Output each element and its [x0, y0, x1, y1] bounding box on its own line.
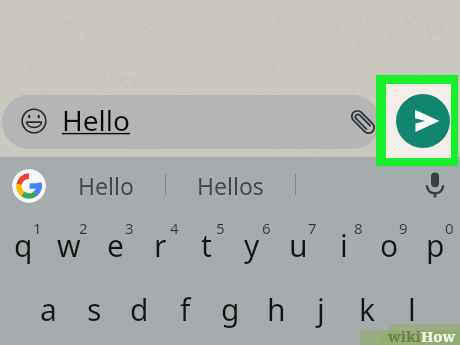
button[interactable]: g	[207, 267, 253, 331]
staticText: wiki	[388, 326, 421, 345]
staticText: t	[201, 225, 212, 266]
button[interactable]: Voice input	[419, 170, 451, 202]
staticText: How	[421, 326, 456, 345]
button[interactable]: j	[298, 267, 344, 331]
staticText: h	[267, 289, 286, 330]
staticText: 6	[262, 218, 271, 238]
button[interactable]: h	[253, 267, 299, 331]
button[interactable]: f	[162, 267, 208, 331]
staticText: 0	[445, 218, 454, 238]
staticText: r	[154, 225, 167, 266]
staticText: e	[107, 225, 124, 266]
button[interactable]: Hellos	[182, 157, 294, 204]
button[interactable]: Hello	[66, 157, 164, 204]
staticText: f	[180, 289, 191, 330]
button[interactable]: l	[389, 267, 435, 331]
staticText: w	[57, 225, 81, 266]
button[interactable]: k	[344, 267, 390, 331]
button[interactable]: e	[92, 203, 138, 267]
staticText: i	[340, 225, 348, 266]
button[interactable]: i	[321, 203, 367, 267]
staticText: l	[408, 289, 416, 330]
staticText: u	[289, 225, 308, 266]
staticText: Hellos	[197, 170, 264, 201]
button[interactable]: q	[0, 203, 46, 267]
button[interactable]: Send	[396, 94, 450, 148]
staticText: q	[14, 225, 33, 266]
button[interactable]: Attach	[341, 100, 380, 144]
button[interactable]: r	[137, 203, 183, 267]
staticText: p	[426, 225, 445, 266]
staticText: Hello	[62, 101, 130, 139]
button[interactable]: Google	[12, 169, 46, 203]
button[interactable]: s	[71, 267, 117, 331]
staticText: Hello	[78, 170, 134, 201]
button[interactable]: w	[46, 203, 92, 267]
staticText: 7	[308, 218, 317, 238]
button[interactable]: a	[25, 267, 71, 331]
staticText: a	[40, 289, 57, 330]
button[interactable]: Emoji	[2, 95, 380, 149]
button[interactable]: d	[116, 267, 162, 331]
staticText: k	[359, 289, 376, 330]
staticText: g	[221, 289, 240, 330]
staticText: 4	[170, 218, 179, 238]
button[interactable]: o	[366, 203, 412, 267]
button[interactable]: y	[229, 203, 275, 267]
staticText: s	[87, 289, 102, 330]
button[interactable]: Emoji	[12, 99, 56, 143]
button[interactable]: p	[412, 203, 458, 267]
button[interactable]: t	[183, 203, 229, 267]
staticText: 2	[79, 218, 88, 238]
staticText: 1	[33, 218, 42, 238]
staticText: o	[380, 225, 399, 266]
staticText: j	[317, 289, 325, 330]
staticText: y	[244, 225, 260, 266]
staticText: 9	[399, 218, 408, 238]
staticText: 5	[216, 218, 225, 238]
button[interactable]: u	[275, 203, 321, 267]
staticText: d	[130, 289, 149, 330]
staticText: 8	[354, 218, 363, 238]
staticText: 3	[125, 218, 134, 238]
